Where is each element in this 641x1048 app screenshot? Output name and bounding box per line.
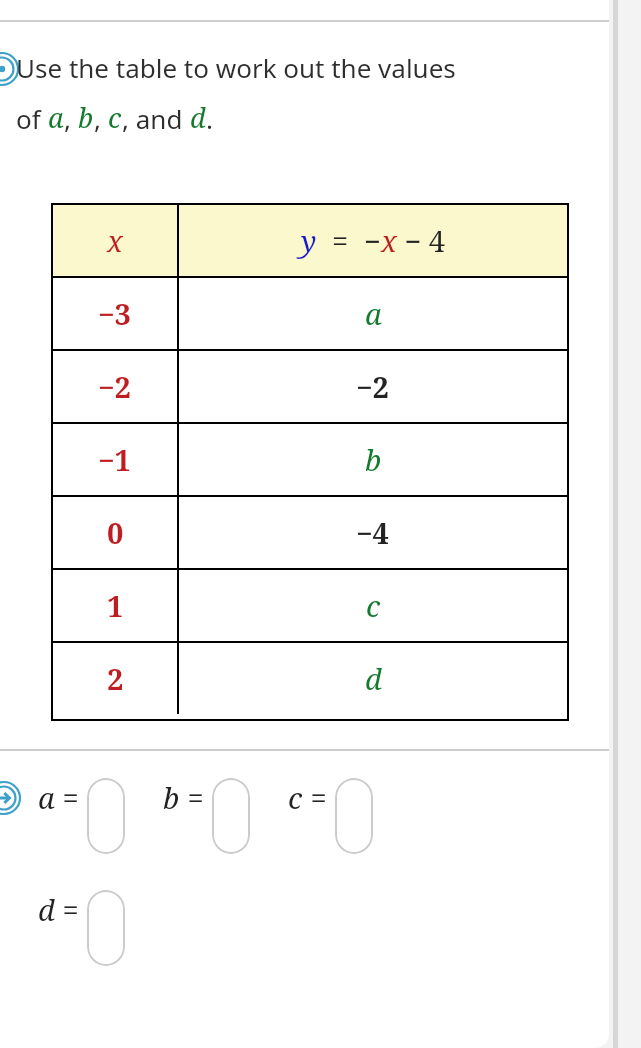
staticText: −4	[356, 513, 390, 552]
button[interactable]: Answer b	[212, 778, 250, 854]
staticText: 2	[107, 659, 124, 698]
staticText: c	[288, 778, 303, 817]
staticText: −3	[98, 294, 132, 333]
staticText: =	[55, 778, 87, 817]
staticText: 1	[107, 586, 124, 625]
staticText: =	[180, 778, 212, 817]
staticText: , and	[122, 101, 190, 136]
staticText: Use the table to work out the values	[16, 50, 456, 85]
staticText: b	[163, 778, 180, 817]
staticText: −	[364, 221, 381, 260]
staticText: −2	[98, 367, 132, 406]
staticText: ,	[94, 101, 108, 136]
staticText: x	[107, 221, 123, 260]
staticText: −2	[356, 367, 390, 406]
staticText: d	[190, 99, 206, 136]
staticText: ,	[64, 101, 78, 136]
staticText: c	[108, 99, 122, 136]
button[interactable]: Answer	[0, 780, 22, 816]
staticText: b	[365, 440, 382, 479]
button[interactable]: Answer d	[87, 890, 125, 966]
staticText: d	[38, 890, 55, 929]
staticText: a	[38, 778, 55, 817]
staticText: .	[206, 101, 213, 136]
staticText: a	[48, 99, 64, 136]
staticText: c	[366, 586, 381, 625]
staticText: =	[303, 778, 335, 817]
staticText: d	[365, 659, 382, 698]
button[interactable]: Question	[0, 51, 20, 87]
button[interactable]: Answer c	[335, 778, 373, 854]
staticText: x	[381, 221, 397, 260]
button[interactable]: Answer a	[87, 778, 125, 854]
staticText: −1	[98, 440, 132, 479]
staticText: a	[365, 294, 382, 333]
staticText: =	[317, 221, 364, 260]
staticText: =	[55, 890, 87, 929]
staticText: of	[16, 101, 48, 136]
staticText: y	[301, 221, 317, 260]
staticText: b	[78, 99, 94, 136]
staticText: − 4	[397, 221, 446, 260]
staticText: 0	[107, 513, 124, 552]
